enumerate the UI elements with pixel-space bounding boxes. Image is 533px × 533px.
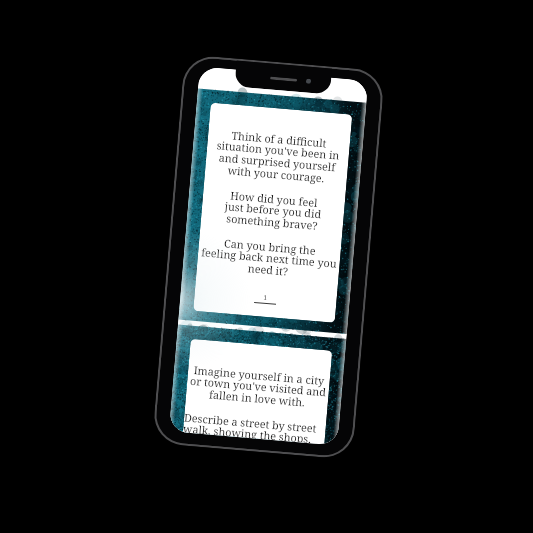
staticText: Imagine yourself in a city or town you'v… xyxy=(186,362,330,412)
staticText: How did you feel just before you did som… xyxy=(200,185,345,236)
button[interactable]: Imagine yourself in a city or town you'v… xyxy=(183,339,332,444)
staticText: 1 xyxy=(263,293,268,302)
button[interactable]: Think of a difficult situation you've be… xyxy=(193,103,352,323)
staticText: Can you bring the feeling back next time… xyxy=(196,233,341,284)
staticText: Think of a difficult situation you've be… xyxy=(205,125,350,188)
staticText: Describe a street by street walk, showin… xyxy=(183,409,326,444)
